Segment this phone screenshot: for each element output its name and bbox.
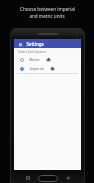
button[interactable]: Recent apps: [18, 174, 38, 182]
staticText: Select Unit System: [18, 50, 46, 54]
button[interactable]: Imperial: [14, 64, 81, 73]
button[interactable]: Open navigation menu: [18, 42, 22, 46]
button[interactable]: Metric: [14, 55, 81, 64]
staticText: Settings: [26, 41, 44, 47]
staticText: and metric units: [29, 13, 65, 19]
button[interactable]: Back: [58, 174, 78, 182]
staticText: Metric: [29, 57, 40, 62]
staticText: Choose between imperial: [20, 6, 75, 12]
button[interactable]: Home: [38, 175, 58, 182]
staticText: Imperial: [29, 66, 44, 71]
button[interactable]: Open navigation menu: [14, 39, 81, 48]
